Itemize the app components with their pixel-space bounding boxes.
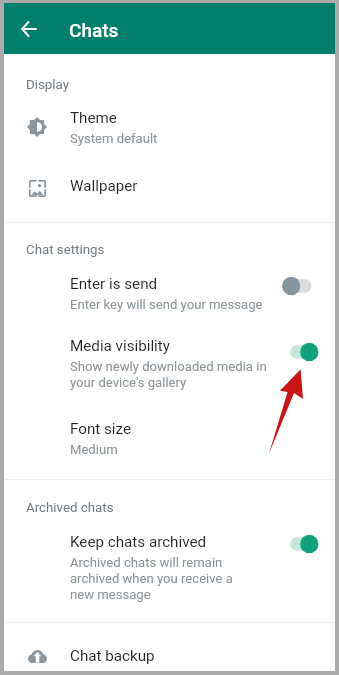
button[interactable]: Media visibility xyxy=(4,331,335,395)
staticText: Medium xyxy=(70,442,118,457)
staticText: Enter is send xyxy=(70,275,158,293)
staticText: Wallpaper xyxy=(70,177,138,195)
staticText: Font size xyxy=(70,420,132,438)
button[interactable]: Toggle off xyxy=(278,271,322,301)
staticText: Chat settings xyxy=(26,242,105,258)
staticText: Theme xyxy=(70,109,117,127)
button[interactable]: Chat backup xyxy=(4,632,335,675)
button[interactable]: Font size xyxy=(4,414,335,462)
button[interactable]: Toggle on xyxy=(278,337,322,367)
staticText: Archived chats xyxy=(26,500,114,516)
button[interactable]: Theme xyxy=(4,103,335,151)
button[interactable]: Toggle on xyxy=(278,529,322,559)
staticText: Keep chats archived xyxy=(70,533,207,551)
button[interactable]: Keep chats archived xyxy=(4,527,335,607)
button[interactable]: Enter is send xyxy=(4,269,335,317)
staticText: Media visibility xyxy=(70,337,170,355)
button[interactable]: Back xyxy=(9,9,49,49)
staticText: Display xyxy=(26,77,69,93)
staticText: System default xyxy=(70,131,158,146)
button[interactable]: Wallpaper xyxy=(4,162,335,210)
staticText: Chat backup xyxy=(70,647,155,665)
staticText: Show newly downloaded media in your devi… xyxy=(70,359,267,390)
staticText: Chats xyxy=(69,19,119,41)
staticText: Archived chats will remain archived when… xyxy=(70,555,233,602)
staticText: Enter key will send your message xyxy=(70,297,263,312)
